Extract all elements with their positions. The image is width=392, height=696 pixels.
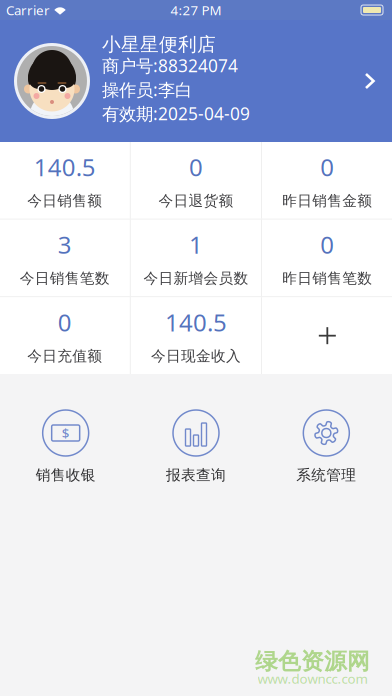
staticText: 系统管理 [296, 466, 356, 484]
staticText: 操作员:李白 [102, 78, 192, 101]
staticText: 4:27 PM [170, 1, 221, 19]
button[interactable]: 报表查询 [131, 410, 261, 484]
staticText: 0 [189, 151, 203, 183]
staticText: 3 [58, 229, 72, 260]
staticText: 销售收银 [36, 466, 96, 484]
button[interactable]: 0 [0, 297, 130, 374]
staticText: 今日退货额 [158, 192, 233, 210]
staticText: 1 [189, 229, 203, 260]
button[interactable]: 添加 [262, 297, 392, 374]
staticText: 有效期:2025-04-09 [102, 102, 250, 125]
staticText: 今日销售笔数 [20, 269, 110, 287]
staticText: www.downcc.com [257, 670, 367, 687]
staticText: Carrier [6, 1, 50, 19]
staticText: 小星星便利店 [102, 33, 216, 56]
staticText: 昨日销售笔数 [282, 269, 372, 287]
staticText: 140.5 [34, 151, 96, 183]
staticText: 今日充值额 [27, 347, 102, 365]
button[interactable]: $ [0, 410, 131, 484]
staticText: 今日现金收入 [151, 347, 241, 365]
staticText: 140.5 [165, 306, 227, 338]
button[interactable]: 1 [131, 220, 261, 296]
staticText: 今日新增会员数 [143, 269, 248, 287]
button[interactable]: 0 [262, 220, 392, 296]
button[interactable]: 系统管理 [261, 410, 391, 484]
button[interactable]: 0 [262, 142, 392, 219]
staticText: 0 [58, 306, 72, 338]
staticText: 今日销售额 [27, 192, 102, 210]
button[interactable]: 3 [0, 220, 130, 296]
staticText: 0 [320, 151, 334, 183]
button[interactable]: 140.5 [0, 142, 130, 219]
staticText: $ [62, 424, 70, 442]
staticText: 绿色资源网 [255, 648, 370, 675]
staticText: 报表查询 [166, 466, 226, 484]
staticText: 昨日销售金额 [282, 192, 372, 210]
button[interactable]: 小星星便利店 [0, 20, 392, 142]
button[interactable]: 0 [131, 142, 261, 219]
staticText: 0 [320, 229, 334, 260]
button[interactable]: 140.5 [131, 297, 261, 374]
staticText: 商户号:88324074 [102, 54, 238, 77]
